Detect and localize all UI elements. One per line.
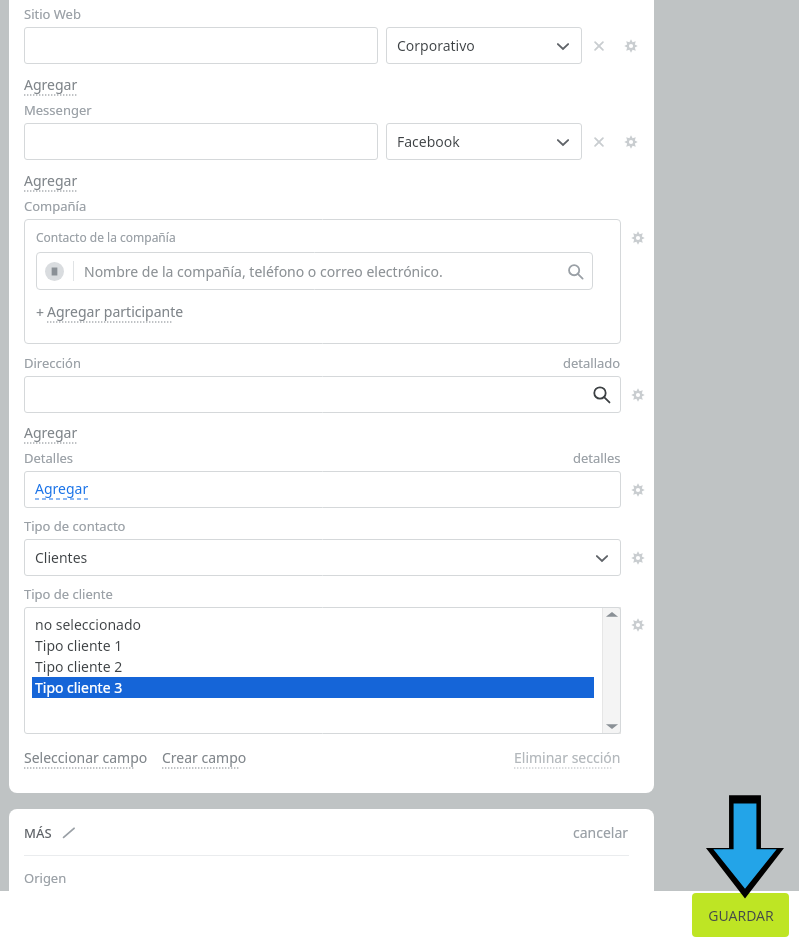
button[interactable]: Tipo cliente 3	[32, 677, 594, 698]
button[interactable]: Configurar	[621, 475, 654, 505]
button[interactable]: no seleccionado	[32, 614, 594, 635]
button[interactable]: Configurar	[616, 127, 646, 157]
button[interactable]	[24, 123, 378, 160]
button[interactable]: Configurar	[621, 613, 654, 637]
staticText: Agregar	[24, 75, 78, 94]
button[interactable]: Configurar	[621, 380, 654, 410]
button[interactable]	[24, 376, 621, 413]
button[interactable]: Configurar	[621, 227, 654, 249]
button[interactable]: Editar	[60, 824, 78, 842]
staticText: Corporativo	[397, 36, 475, 55]
staticText: Origen	[24, 869, 67, 887]
button[interactable]	[24, 27, 378, 64]
button[interactable]: +	[36, 302, 184, 323]
button[interactable]: Agregar	[24, 169, 78, 194]
staticText: Crear campo	[162, 748, 247, 767]
staticText: Agregar	[24, 171, 78, 190]
staticText: MÁS	[24, 824, 52, 842]
staticText: Agregar	[24, 423, 78, 442]
staticText: Dirección	[24, 354, 82, 372]
button[interactable]: Facebook	[386, 123, 582, 160]
staticText: Compañía	[24, 197, 87, 215]
button[interactable]: Eliminar sección	[514, 748, 621, 769]
staticText: Agregar participante	[47, 302, 184, 321]
staticText: Eliminar sección	[514, 748, 621, 767]
staticText: Contacto de la compañía	[36, 229, 176, 245]
staticText: cancelar	[573, 823, 629, 842]
staticText: Tipo cliente 2	[35, 657, 123, 676]
staticText: Facebook	[397, 132, 460, 151]
staticText: Detalles	[24, 449, 74, 467]
button[interactable]: Quitar	[582, 127, 616, 157]
staticText: GUARDAR	[708, 906, 774, 925]
staticText: +	[36, 303, 45, 322]
staticText: Tipo cliente 1	[35, 636, 123, 655]
button[interactable]: cancelar	[573, 823, 629, 842]
button[interactable]: Corporativo	[386, 27, 582, 64]
button[interactable]: Agregar	[24, 421, 78, 446]
button[interactable]: Tipo cliente 1	[32, 635, 594, 656]
staticText: Tipo de contacto	[24, 517, 126, 535]
button[interactable]: Crear campo	[162, 748, 247, 769]
staticText: detallado	[563, 354, 621, 372]
button[interactable]: Nombre de la compañía, teléfono o correo…	[36, 252, 593, 290]
button[interactable]: Configurar	[616, 31, 646, 61]
staticText: detalles	[573, 449, 621, 467]
button[interactable]: Agregar	[24, 73, 78, 98]
staticText: Tipo de cliente	[24, 585, 113, 603]
staticText: Clientes	[35, 548, 88, 567]
staticText: Messenger	[24, 101, 92, 119]
button[interactable]: Configurar	[621, 543, 654, 573]
button[interactable]: GUARDAR	[692, 893, 789, 937]
staticText: Tipo cliente 3	[35, 678, 123, 697]
staticText: Sitio Web	[24, 5, 81, 23]
staticText: Agregar	[35, 479, 89, 498]
staticText: Nombre de la compañía, teléfono o correo…	[84, 262, 443, 281]
button[interactable]: Seleccionar campo	[24, 748, 148, 769]
staticText: no seleccionado	[35, 615, 141, 634]
button[interactable]: Agregar	[24, 471, 621, 508]
button[interactable]: Quitar	[582, 31, 616, 61]
staticText: Seleccionar campo	[24, 748, 148, 767]
button[interactable]: Clientes	[24, 539, 621, 576]
button[interactable]: Tipo cliente 2	[32, 656, 594, 677]
